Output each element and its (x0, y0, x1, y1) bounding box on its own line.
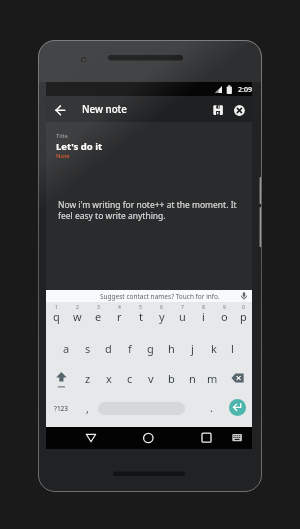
staticText: e (95, 309, 102, 324)
staticText: h (168, 341, 175, 356)
button[interactable]: s (77, 340, 98, 356)
button[interactable]: t (130, 308, 151, 324)
button[interactable] (221, 370, 252, 386)
button[interactable] (46, 366, 77, 390)
button[interactable]: o (214, 308, 235, 324)
button[interactable]: i (193, 308, 214, 324)
staticText: c (127, 371, 133, 386)
button[interactable]: e (88, 308, 109, 324)
button[interactable]: k (203, 340, 224, 356)
staticText: 7 (181, 304, 184, 311)
button[interactable] (137, 427, 159, 449)
button[interactable] (50, 98, 71, 120)
button[interactable]: x (98, 370, 119, 386)
staticText: r (117, 309, 122, 324)
staticText: New note (82, 103, 127, 116)
staticText: Suggest contact names? Touch for info. (100, 292, 220, 301)
staticText: 3 (97, 304, 100, 311)
staticText: Now i'm writing for note++ at the moment… (58, 199, 237, 221)
staticText: t (139, 309, 143, 324)
staticText: 1 (55, 304, 58, 311)
staticText: v (148, 371, 154, 386)
staticText: q (53, 309, 60, 324)
staticText: o (221, 309, 228, 324)
button[interactable]: l (224, 340, 241, 356)
button[interactable]: c (119, 370, 140, 386)
button[interactable]: q (46, 308, 67, 324)
button[interactable]: . (201, 399, 222, 415)
staticText: 2:09 (238, 85, 252, 95)
button[interactable]: f (119, 340, 140, 356)
button[interactable]: h (161, 340, 182, 356)
button[interactable] (229, 399, 246, 416)
staticText: ?123 (54, 404, 69, 413)
staticText: m (207, 371, 218, 386)
button[interactable] (46, 122, 252, 290)
staticText: Note (56, 152, 70, 160)
staticText: f (128, 341, 132, 356)
button[interactable]: y (151, 308, 172, 324)
button[interactable]: u (172, 308, 193, 324)
staticText: z (85, 371, 91, 386)
button[interactable]: j (182, 340, 203, 356)
button[interactable]: a (56, 340, 77, 356)
staticText: k (211, 341, 217, 356)
staticText: b (168, 371, 175, 386)
staticText: 9 (223, 304, 226, 311)
staticText: g (147, 341, 154, 356)
button[interactable]: w (67, 308, 88, 324)
staticText: Title (56, 132, 68, 140)
button[interactable]: p (235, 308, 252, 324)
button[interactable]: Suggest contact names? Touch for info. (46, 290, 252, 302)
button[interactable]: g (140, 340, 161, 356)
staticText: d (105, 341, 112, 356)
button[interactable] (230, 100, 250, 120)
button[interactable]: v (140, 370, 161, 386)
button[interactable]: m (203, 370, 221, 386)
staticText: 2 (76, 304, 79, 311)
staticText: 4 (118, 304, 121, 311)
button[interactable] (195, 427, 217, 449)
staticText: u (179, 309, 186, 324)
staticText: . (210, 400, 213, 415)
button[interactable]: z (77, 370, 98, 386)
button[interactable]: d (98, 340, 119, 356)
staticText: a (63, 341, 70, 356)
staticText: 8 (202, 304, 205, 311)
staticText: p (240, 309, 247, 324)
button[interactable] (228, 427, 246, 449)
staticText: l (231, 341, 234, 356)
staticText: 5 (139, 304, 142, 311)
button[interactable]: n (182, 370, 203, 386)
staticText: j (191, 341, 194, 356)
button[interactable] (208, 100, 228, 120)
staticText: x (106, 371, 112, 386)
button[interactable]: ?123 (46, 400, 77, 416)
button[interactable] (80, 427, 102, 449)
staticText: n (189, 371, 196, 386)
staticText: Let's do it (56, 140, 103, 151)
staticText: 0 (242, 304, 245, 311)
button[interactable]: b (161, 370, 182, 386)
staticText: s (85, 341, 91, 356)
staticText: y (159, 309, 165, 324)
button[interactable]: , (77, 400, 98, 416)
button[interactable]: r (109, 308, 130, 324)
staticText: 6 (160, 304, 163, 311)
staticText: w (73, 309, 82, 324)
staticText: i (202, 309, 205, 324)
staticText: , (86, 401, 89, 416)
